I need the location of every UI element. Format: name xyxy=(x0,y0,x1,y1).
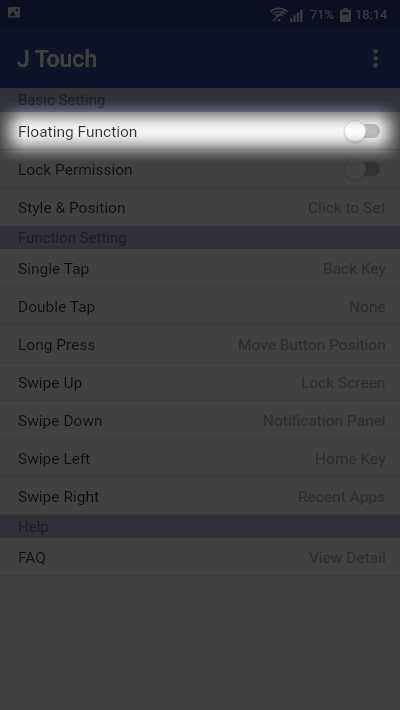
staticText: None xyxy=(349,298,386,316)
button[interactable]: Style & Position xyxy=(0,188,400,226)
button[interactable]: Swipe Right xyxy=(0,477,400,515)
staticText: Basic Setting xyxy=(18,91,106,109)
staticText: Move Button Position xyxy=(238,336,386,354)
staticText: 18:14 xyxy=(355,7,388,22)
staticText: Swipe Right xyxy=(18,488,100,506)
button[interactable]: FAQ xyxy=(0,538,400,576)
button[interactable]: More options xyxy=(352,29,400,88)
button[interactable]: Swipe Down xyxy=(0,401,400,439)
staticText: Single Tap xyxy=(18,260,90,278)
staticText: FAQ xyxy=(18,549,46,567)
staticText: Double Tap xyxy=(18,298,96,316)
staticText: Recent Apps xyxy=(298,488,386,506)
button[interactable]: Floating Function xyxy=(0,112,400,150)
staticText: Floating Function xyxy=(18,123,138,141)
staticText: Function Setting xyxy=(18,229,127,247)
staticText: 71% xyxy=(310,7,335,22)
staticText: Lock Permission xyxy=(18,161,133,179)
staticText: View Detail xyxy=(309,549,386,567)
staticText: Lock Screen xyxy=(301,374,386,392)
button[interactable]: Single Tap xyxy=(0,249,400,287)
staticText: Long Press xyxy=(18,336,96,354)
button[interactable]: Swipe Left xyxy=(0,439,400,477)
staticText: Swipe Left xyxy=(18,450,91,468)
staticText: Home Key xyxy=(315,450,386,468)
button[interactable]: Lock Permission xyxy=(0,150,400,188)
staticText: Back Key xyxy=(323,260,386,278)
staticText: Click to Set xyxy=(308,199,386,217)
staticText: Help xyxy=(18,518,49,536)
staticText: Swipe Up xyxy=(18,374,83,392)
staticText: Swipe Down xyxy=(18,412,103,430)
staticText: Style & Position xyxy=(18,199,126,217)
button[interactable]: Long Press xyxy=(0,325,400,363)
staticText: J Touch xyxy=(17,46,98,73)
button[interactable]: Double Tap xyxy=(0,287,400,325)
button[interactable]: Swipe Up xyxy=(0,363,400,401)
staticText: Notification Panel xyxy=(263,412,386,430)
